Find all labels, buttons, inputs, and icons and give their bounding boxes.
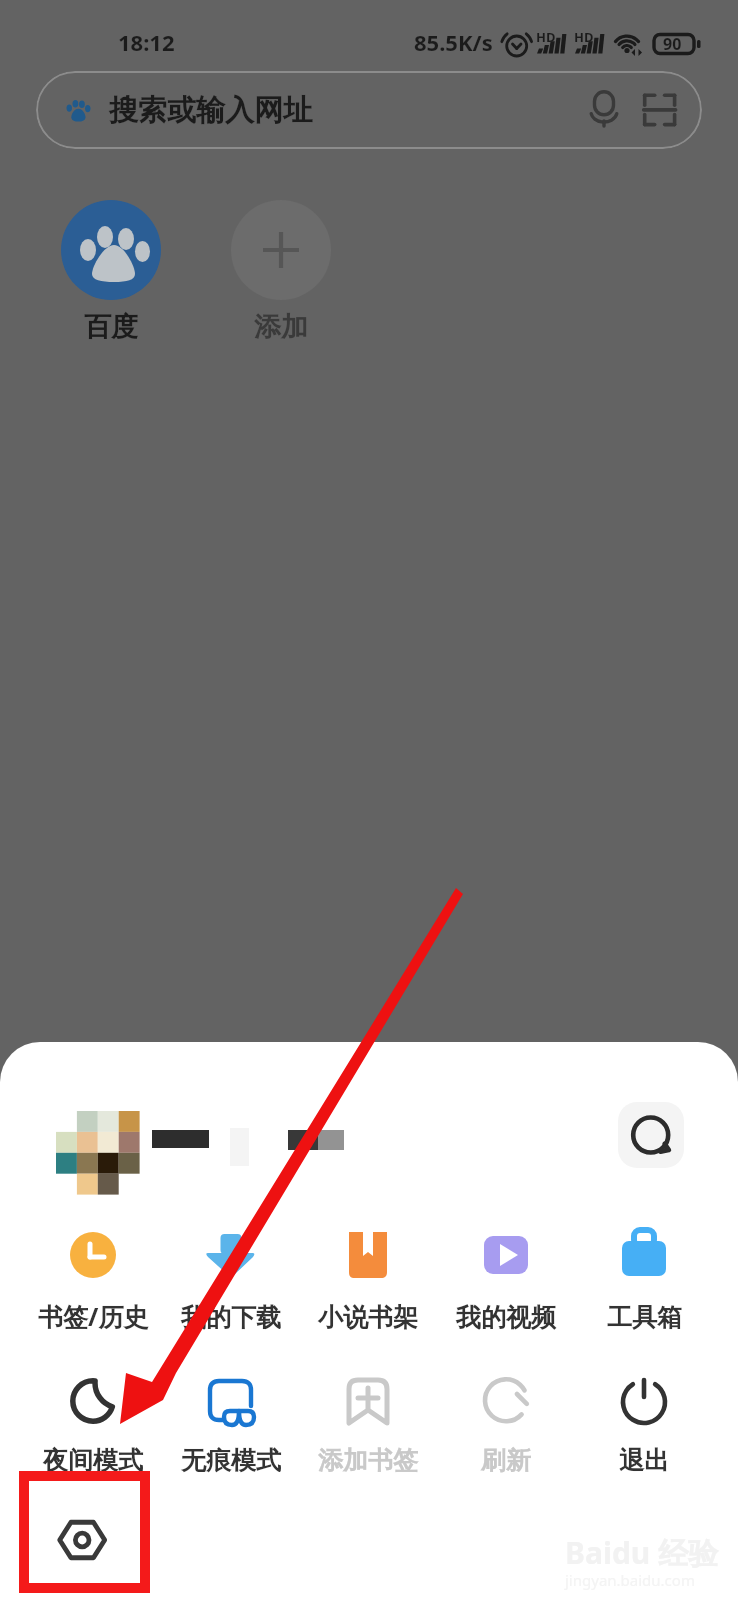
button[interactable]: 我的下载 bbox=[165, 1226, 297, 1333]
staticText: 小说书架 bbox=[318, 1302, 418, 1333]
staticText: 退出 bbox=[619, 1445, 669, 1476]
button[interactable]: 工具箱 bbox=[578, 1226, 710, 1333]
button[interactable]: 书签/历史 bbox=[27, 1226, 159, 1333]
button[interactable]: 搜索或输入网址 bbox=[36, 71, 702, 149]
button[interactable]: Scan QR code bbox=[629, 72, 689, 148]
button[interactable]: Feedback bbox=[618, 1102, 684, 1168]
staticText: 18:12 bbox=[118, 27, 175, 57]
button[interactable]: 百度 bbox=[38, 200, 184, 344]
staticText: Baidu 经验 bbox=[565, 1532, 719, 1573]
staticText: 百度 bbox=[84, 310, 138, 344]
staticText: 工具箱 bbox=[607, 1302, 682, 1333]
button[interactable]: 无痕模式 bbox=[165, 1372, 297, 1479]
button[interactable]: Settings bbox=[19, 1471, 150, 1593]
staticText: 无痕模式 bbox=[181, 1445, 281, 1476]
button[interactable]: 我的视频 bbox=[440, 1226, 572, 1333]
staticText: 书签/历史 bbox=[38, 1299, 149, 1333]
staticText: 我的视频 bbox=[456, 1302, 556, 1333]
staticText: jingyan.baidu.com bbox=[565, 1570, 695, 1590]
button[interactable]: 退出 bbox=[578, 1372, 710, 1479]
button[interactable]: 添加 bbox=[208, 200, 354, 344]
staticText: 我的下载 bbox=[181, 1302, 281, 1333]
button[interactable]: 刷新 bbox=[440, 1372, 572, 1479]
button[interactable]: Voice search bbox=[575, 72, 635, 148]
button[interactable]: 小说书架 bbox=[302, 1226, 434, 1333]
staticText: HD bbox=[536, 28, 556, 46]
staticText: 刷新 bbox=[481, 1445, 531, 1476]
staticText: 添加 bbox=[254, 310, 308, 344]
button[interactable]: 夜间模式 bbox=[27, 1372, 159, 1479]
staticText: 添加书签 bbox=[318, 1445, 418, 1476]
staticText: 85.5K/s bbox=[414, 27, 493, 57]
staticText: 夜间模式 bbox=[43, 1445, 143, 1476]
staticText: HD bbox=[574, 28, 594, 46]
staticText: 搜索或输入网址 bbox=[109, 92, 312, 129]
staticText: 90 bbox=[663, 33, 682, 55]
button[interactable]: 添加书签 bbox=[302, 1372, 434, 1479]
